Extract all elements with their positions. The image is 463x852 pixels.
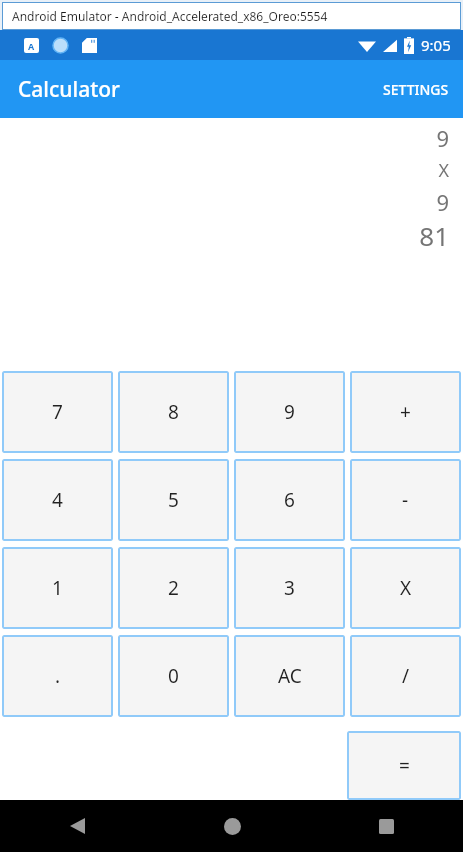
staticText: 9:05 <box>421 35 451 55</box>
button[interactable]: 4 <box>2 459 113 541</box>
staticText: 5 <box>168 487 179 513</box>
staticText: / <box>402 663 410 689</box>
staticText: 2 <box>168 575 179 601</box>
button[interactable]: Recent apps <box>309 800 463 852</box>
staticText: 9 <box>284 399 295 425</box>
staticText: = <box>399 753 410 779</box>
button[interactable]: SETTINGS <box>369 68 463 111</box>
staticText: 7 <box>52 399 63 425</box>
button[interactable]: 1 <box>2 547 113 629</box>
button[interactable]: 8 <box>118 371 229 453</box>
staticText: . <box>55 663 61 689</box>
staticText: - <box>402 487 409 513</box>
button[interactable]: + <box>350 371 461 453</box>
staticText: 3 <box>284 575 295 601</box>
button[interactable]: - <box>350 459 461 541</box>
button[interactable]: Home <box>155 800 309 852</box>
staticText: 4 <box>52 487 63 513</box>
staticText: X <box>400 575 412 601</box>
button[interactable]: 9 <box>234 371 345 453</box>
staticText: Android Emulator - Android_Accelerated_x… <box>12 8 328 24</box>
staticText: AC <box>278 663 302 689</box>
button[interactable]: / <box>350 635 461 717</box>
button[interactable]: 6 <box>234 459 345 541</box>
button[interactable]: AC <box>234 635 345 717</box>
staticText: SETTINGS <box>383 80 449 99</box>
staticText: 1 <box>52 575 63 601</box>
button[interactable]: . <box>2 635 113 717</box>
button[interactable]: 3 <box>234 547 345 629</box>
button[interactable]: 7 <box>2 371 113 453</box>
button[interactable]: 0 <box>118 635 229 717</box>
staticText: + <box>400 399 411 425</box>
staticText: X <box>438 158 449 183</box>
button[interactable]: Back <box>0 800 155 852</box>
staticText: A <box>28 40 35 52</box>
button[interactable]: = <box>347 731 461 800</box>
staticText: 0 <box>168 663 179 689</box>
button[interactable]: 2 <box>118 547 229 629</box>
staticText: 81 <box>419 218 449 250</box>
staticText: 9 <box>436 187 449 217</box>
staticText: 8 <box>168 399 179 425</box>
button[interactable]: 5 <box>118 459 229 541</box>
staticText: 9 <box>436 123 449 153</box>
button[interactable]: X <box>350 547 461 629</box>
staticText: Calculator <box>18 75 120 104</box>
staticText: 6 <box>284 487 295 513</box>
